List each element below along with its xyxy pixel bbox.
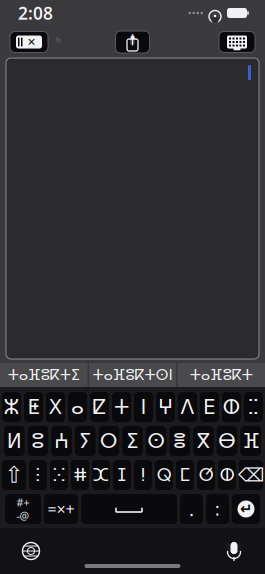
button[interactable]: ⵉ [122,426,143,456]
staticText: ⵔ [100,430,118,452]
button[interactable]: Next keyboard [16,536,46,566]
button[interactable]: ⵀ [218,460,236,490]
staticText: 2:08 [18,1,53,24]
button[interactable]: ⵜ [112,392,131,422]
button[interactable]: ⵍ [4,426,25,456]
staticText: ⵇ [92,396,106,418]
button[interactable]: ⴷ [178,392,197,422]
staticText: ⵊ [117,465,126,485]
button[interactable]: ⵙ [146,426,166,456]
staticText: ⵕ [156,465,171,485]
staticText: ⴼ [242,430,259,452]
button[interactable]: ⵜⴰⴼⵓⴽⵜⵉ [0,363,88,387]
staticText: ⵜⴰⴼⵓⴽⵜⵙⵏ [92,367,172,383]
staticText: ⵖ [158,396,173,418]
staticText: ▲ [129,31,135,41]
button[interactable]: ⵏ [134,392,153,422]
button[interactable]: ⴰ [68,392,87,422]
button[interactable]: ⵑ [134,460,152,490]
staticText: ✕ [27,36,36,48]
staticText: ⵏ [140,396,146,418]
button[interactable]: ⵣ [2,392,21,422]
button[interactable]: ⵘ [50,460,68,490]
button[interactable]: Symbols [5,494,41,524]
staticText: ⴹ [203,396,216,418]
button[interactable]: ⵖ [156,392,175,422]
staticText: ⵓ [31,430,44,452]
button[interactable]: ⵗ [29,460,47,490]
staticText: : [215,497,220,520]
staticText: ⵢ [79,430,92,452]
staticText: ⴳ [196,430,210,452]
button[interactable]: ⴱ [217,426,237,456]
staticText: ⵉ [126,430,139,452]
button[interactable]: Dictation [219,536,249,566]
button[interactable]: Shift [2,460,26,490]
button[interactable]: ⵀ [222,392,241,422]
staticText: ⵋ [92,465,109,485]
staticText: ⵘ [52,465,65,485]
button[interactable]: ⵊ [113,460,131,490]
staticText: ⵟ [27,396,39,418]
staticText: ⵜⴰⴼⵓⴽⵜⵉ [8,367,80,383]
button[interactable]: ⵋ [92,460,110,490]
button[interactable]: Share [115,31,149,53]
button[interactable]: Keyboard [219,31,255,52]
staticText: ⵑ [140,465,145,485]
button[interactable]: Period [180,494,203,524]
staticText: ʰ [56,34,61,50]
staticText: ⵄ [54,430,69,452]
button[interactable]: ⵔ [98,426,119,456]
button[interactable]: Delete [239,460,263,490]
button[interactable]: ⵚ [197,460,215,490]
button[interactable]: ⵜⴰⴼⵓⴽⵜⵙⵏ [89,363,176,387]
staticText: ⵝ [48,396,62,418]
button[interactable]: ⴻ [169,426,190,456]
staticText: ⵗ [35,465,41,485]
button[interactable]: ⵟ [24,392,43,422]
staticText: ⵍ [7,430,22,452]
staticText: ⵜ [114,396,129,418]
button[interactable]: ⴳ [193,426,214,456]
staticText: ⵙ [147,430,165,452]
staticText: ⵌ [73,465,86,485]
staticText: ⵜⴰⴼⵓⴽⵜ [190,367,253,383]
staticText: ⴰ [71,396,84,418]
staticText: ⵆ [248,396,259,418]
button[interactable]: ⵇ [90,392,109,422]
staticText: -@ [16,508,29,523]
button[interactable]: Space [81,494,177,524]
button[interactable]: ⵜⴰⴼⵓⴽⵜ [177,363,265,387]
staticText: ⵀ [222,396,240,418]
staticText: ⵣ [3,396,19,418]
button[interactable]: Clear text [10,31,48,52]
button[interactable]: ⵆ [244,392,263,422]
button[interactable]: ⵌ [71,460,89,490]
button[interactable]: ⴼ [240,426,261,456]
button[interactable]: ⴹ [200,392,219,422]
button[interactable]: ⵢ [75,426,95,456]
staticText: ⵀ [219,465,234,485]
button[interactable]: ⵕ [155,460,173,490]
staticText: ⌫ [238,464,264,486]
button[interactable]: Return [232,494,260,524]
staticText: #+ [16,495,29,509]
staticText: ⴷ [180,396,194,418]
button[interactable]: ⵝ [46,392,65,422]
button[interactable]: ⵎ [176,460,194,490]
staticText: ⴱ [218,430,236,452]
staticText: ↵ [240,501,252,517]
button[interactable]: ⵓ [28,426,48,456]
staticText: =×+ [47,498,74,520]
button[interactable]: Numbers [44,494,78,524]
staticText: ⴻ [173,430,187,452]
staticText: . [189,497,194,521]
button[interactable]: ⵄ [51,426,72,456]
staticText: ⵚ [198,465,213,485]
staticText: ⇧ [4,462,23,488]
button[interactable]: Colon [206,494,229,524]
staticText: ⵎ [179,465,190,485]
